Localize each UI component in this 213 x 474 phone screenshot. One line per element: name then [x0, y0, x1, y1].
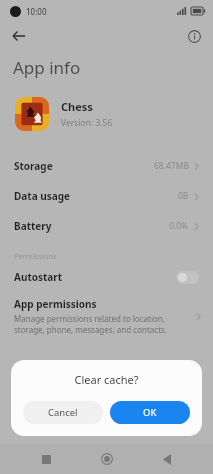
button[interactable]: App details [181, 23, 207, 49]
staticText: Battery [14, 219, 52, 233]
button[interactable]: Back [152, 444, 182, 474]
staticText: Permissions [14, 251, 57, 261]
staticText: 0.0% [169, 220, 189, 232]
button[interactable]: Chess [0, 93, 213, 135]
button[interactable]: Storage [0, 151, 213, 181]
staticText: Clear cache? [74, 372, 139, 387]
button[interactable]: Back [6, 23, 32, 49]
button[interactable]: Home [92, 444, 122, 474]
button[interactable]: Recents [31, 444, 61, 474]
staticText: App info [13, 56, 81, 79]
button[interactable]: App permissions [0, 291, 213, 341]
staticText: Cancel [48, 406, 78, 419]
staticText: Storage [14, 159, 53, 173]
button[interactable]: Battery [0, 211, 213, 241]
staticText: 0B [178, 190, 189, 202]
staticText: 10:00 [26, 6, 47, 17]
staticText: Autostart [14, 270, 63, 284]
staticText: 68.47MB [154, 160, 189, 172]
staticText: Version: 3.56 [61, 117, 113, 129]
staticText: Chess [61, 99, 93, 114]
other: Autostart toggle [176, 271, 199, 284]
button[interactable]: Autostart [0, 263, 213, 291]
staticText: Manage permissions related to location, … [14, 313, 190, 335]
button[interactable]: OK [110, 401, 190, 424]
button[interactable]: Cancel [23, 401, 103, 424]
staticText: OK [143, 406, 157, 419]
staticText: App permissions [14, 297, 97, 311]
button[interactable]: Data usage [0, 181, 213, 211]
staticText: Data usage [14, 189, 71, 203]
